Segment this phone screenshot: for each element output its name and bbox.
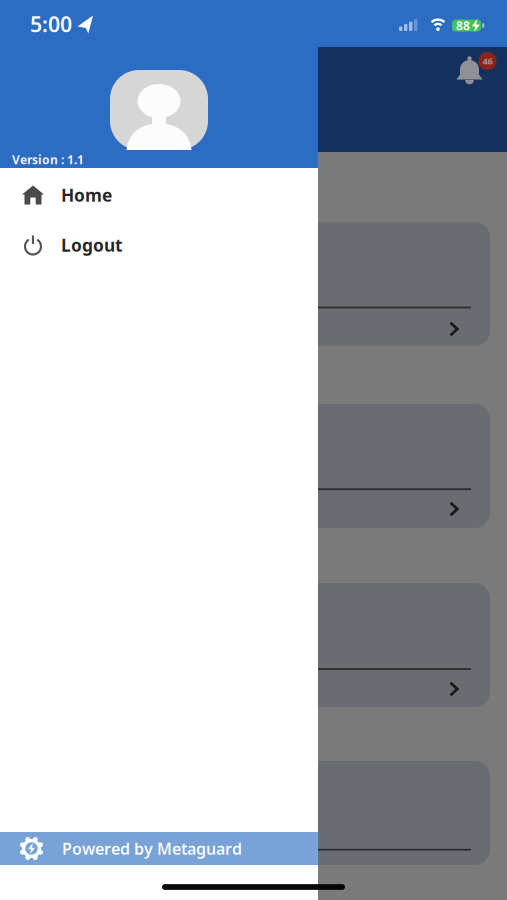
- staticText: Powered by Metaguard: [62, 838, 242, 859]
- button[interactable]: Powered by Metaguard: [0, 832, 318, 865]
- staticText: 88: [456, 17, 470, 33]
- staticText: Home: [61, 183, 112, 206]
- button[interactable]: Home: [0, 170, 318, 220]
- staticText: 46: [482, 55, 492, 67]
- staticText: 5:00: [30, 10, 72, 38]
- staticText: Version : 1.1: [12, 151, 84, 167]
- button[interactable]: Logout: [0, 220, 318, 270]
- staticText: Logout: [61, 233, 123, 256]
- button[interactable]: Notifications: [447, 48, 491, 90]
